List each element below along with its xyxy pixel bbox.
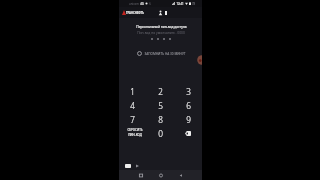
- staticText: ПИН-КОД: [128, 133, 142, 137]
- staticText: ТРАНСНЕФТЬ: [126, 11, 144, 15]
- button[interactable]: Hide keyboard: [135, 164, 140, 168]
- button[interactable]: Keyboard: [125, 164, 131, 168]
- button[interactable]: Backspace: [174, 126, 202, 140]
- button[interactable]: 8: [146, 112, 174, 126]
- staticText: 12:41: [176, 2, 184, 6]
- button[interactable]: СБРОСИТЬ: [118, 126, 146, 140]
- staticText: 4: [130, 100, 135, 111]
- button[interactable]: 5: [146, 98, 174, 112]
- staticText: 1: [130, 86, 135, 97]
- staticText: ЗАПОМНИТЬ НА 30 МИНУТ: [144, 52, 186, 56]
- button[interactable]: Profile: [158, 10, 163, 16]
- staticText: 3: [186, 86, 191, 97]
- button[interactable]: Home: [157, 172, 165, 179]
- button[interactable]: Support chat: [197, 55, 207, 65]
- staticText: 7: [130, 114, 135, 125]
- button[interactable]: 1: [118, 84, 146, 98]
- staticText: Пин-код по умолчанию - 0000: [137, 30, 185, 34]
- button[interactable]: Recents: [137, 172, 145, 179]
- staticText: 6: [149, 2, 151, 6]
- staticText: 6: [186, 100, 191, 111]
- button[interactable]: 3: [174, 84, 202, 98]
- staticText: 4G: [140, 2, 144, 6]
- staticText: unicom: [129, 2, 139, 6]
- staticText: 0: [158, 128, 163, 139]
- button[interactable]: 6: [174, 98, 202, 112]
- staticText: 78: [192, 2, 195, 6]
- staticText: 5: [158, 100, 163, 111]
- button[interactable]: Back: [177, 172, 185, 179]
- button[interactable]: 2: [146, 84, 174, 98]
- button[interactable]: 9: [174, 112, 202, 126]
- button[interactable]: ЗАПОМНИТЬ НА 30 МИНУТ: [135, 50, 188, 57]
- staticText: СБРОСИТЬ: [127, 128, 143, 132]
- button[interactable]: 4: [118, 98, 146, 112]
- staticText: 8: [158, 114, 163, 125]
- button[interactable]: 7: [118, 112, 146, 126]
- staticText: 2: [158, 86, 163, 97]
- staticText: 9: [186, 114, 191, 125]
- staticText: Персональный пин-код доступа: [136, 25, 187, 29]
- button[interactable]: 0: [146, 126, 174, 140]
